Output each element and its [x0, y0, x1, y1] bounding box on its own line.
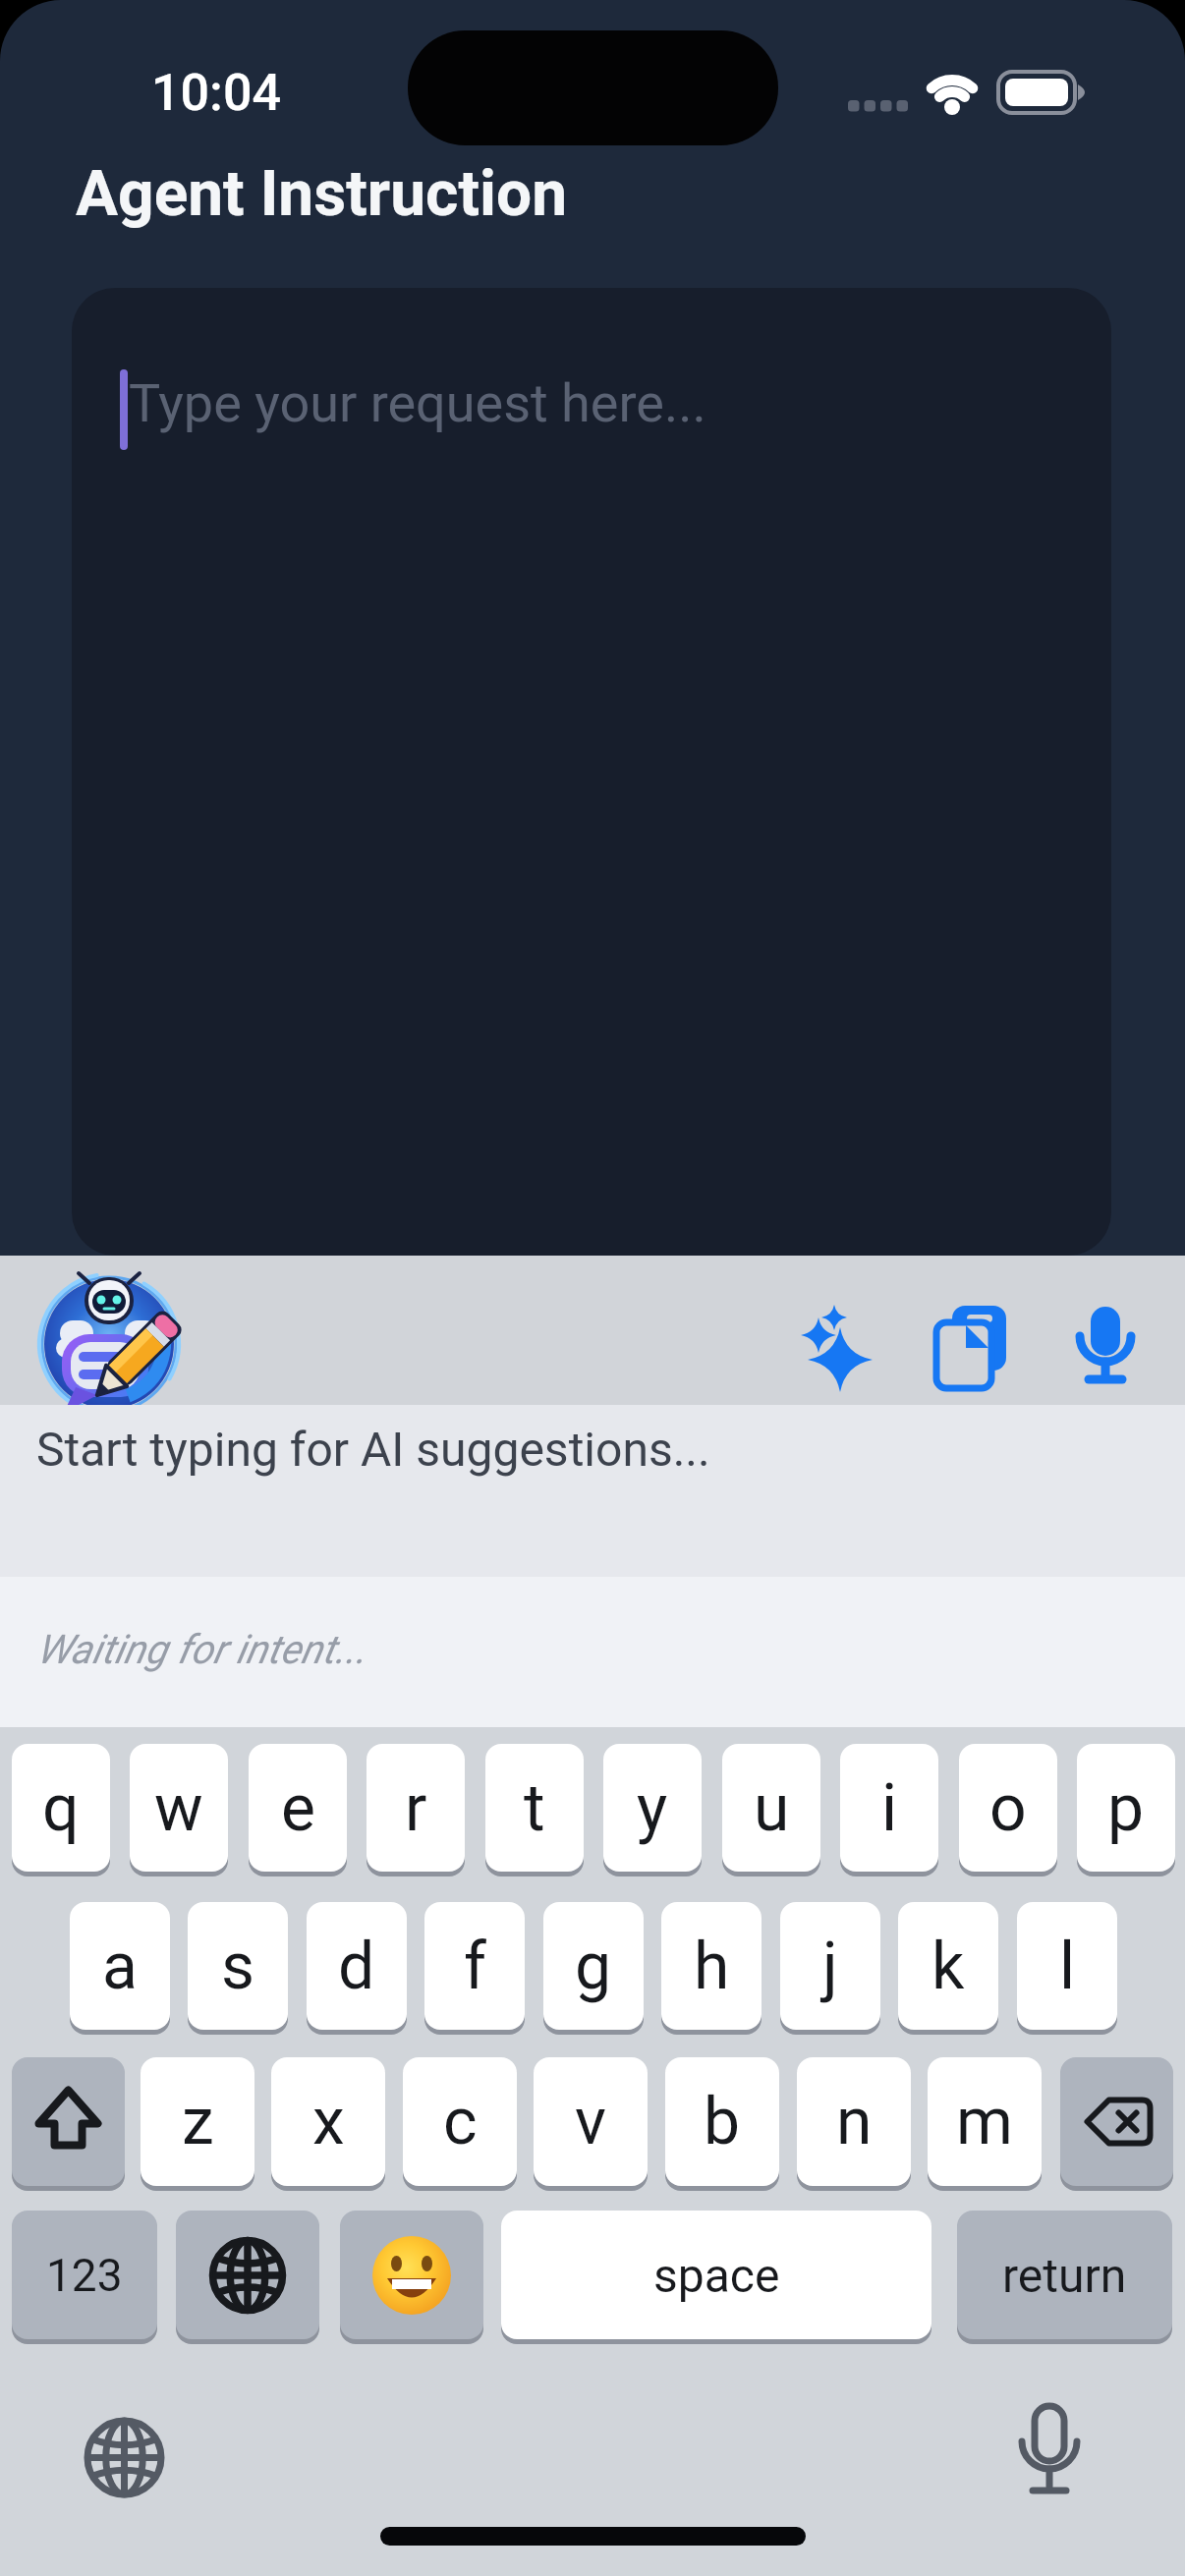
button[interactable] [1007, 2400, 1092, 2503]
staticText: space [653, 2248, 780, 2303]
button[interactable]: q [12, 1744, 110, 1872]
button[interactable]: k [898, 1902, 998, 2030]
staticText: f [464, 1929, 486, 2004]
button[interactable]: o [959, 1744, 1057, 1872]
button[interactable]: f [424, 1902, 525, 2030]
button[interactable] [176, 2211, 319, 2339]
staticText: j [822, 1929, 838, 2004]
button[interactable]: e [249, 1744, 347, 1872]
button[interactable]: d [307, 1902, 407, 2030]
button[interactable] [791, 1295, 884, 1393]
staticText: x [312, 2084, 345, 2159]
button[interactable]: w [130, 1744, 228, 1872]
staticText: g [575, 1929, 612, 2004]
button[interactable]: Type your request here... [72, 288, 1111, 1256]
button[interactable] [924, 1295, 1017, 1393]
staticText: Start typing for AI suggestions... [36, 1422, 710, 1477]
staticText: e [281, 1770, 315, 1846]
staticText: y [637, 1770, 668, 1846]
button[interactable]: y [603, 1744, 702, 1872]
staticText: w [154, 1770, 203, 1846]
staticText: h [694, 1929, 730, 2004]
button[interactable]: n [797, 2057, 911, 2186]
staticText: return [1002, 2248, 1127, 2303]
button[interactable] [1060, 2057, 1173, 2186]
staticText: z [182, 2084, 214, 2159]
button[interactable]: p [1077, 1744, 1175, 1872]
button[interactable]: v [534, 2057, 648, 2186]
staticText: i [881, 1770, 898, 1846]
staticText: o [989, 1770, 1027, 1846]
button[interactable]: c [403, 2057, 517, 2186]
staticText: t [524, 1770, 545, 1846]
staticText: r [405, 1770, 427, 1846]
button[interactable] [1066, 1295, 1150, 1393]
staticText: a [102, 1929, 138, 2004]
button[interactable]: return [957, 2211, 1172, 2339]
button[interactable]: h [661, 1902, 762, 2030]
staticText: u [754, 1770, 790, 1846]
button[interactable]: u [722, 1744, 820, 1872]
staticText: l [1059, 1929, 1076, 2004]
button[interactable]: t [485, 1744, 584, 1872]
staticText: 123 [46, 2249, 123, 2302]
button[interactable] [81, 2414, 168, 2501]
staticText: n [836, 2084, 873, 2159]
staticText: c [443, 2084, 478, 2159]
staticText: v [575, 2084, 606, 2159]
button[interactable]: b [665, 2057, 779, 2186]
staticText: p [1107, 1770, 1145, 1846]
button[interactable]: x [271, 2057, 385, 2186]
staticText: s [221, 1929, 255, 2004]
button[interactable]: Start typing for AI suggestions... [0, 1405, 1185, 1577]
staticText: b [704, 2084, 741, 2159]
staticText: Type your request here... [129, 372, 706, 434]
staticText: Waiting for intent... [36, 1626, 367, 1673]
staticText: q [42, 1770, 80, 1846]
staticText: 10:04 [151, 63, 282, 123]
button[interactable]: i [840, 1744, 938, 1872]
button[interactable]: m [928, 2057, 1042, 2186]
button[interactable] [12, 2057, 125, 2186]
button[interactable] [35, 1273, 183, 1411]
button[interactable]: l [1017, 1902, 1117, 2030]
button[interactable]: j [780, 1902, 880, 2030]
staticText: m [956, 2084, 1013, 2159]
button[interactable] [340, 2211, 483, 2339]
button[interactable]: g [543, 1902, 644, 2030]
button[interactable]: s [188, 1902, 288, 2030]
button[interactable]: z [141, 2057, 254, 2186]
button[interactable]: r [367, 1744, 465, 1872]
button[interactable]: Waiting for intent... [0, 1577, 1185, 1727]
button[interactable]: a [70, 1902, 170, 2030]
staticText: k [931, 1929, 965, 2004]
staticText: d [338, 1929, 375, 2004]
button[interactable]: space [501, 2211, 931, 2339]
staticText: Agent Instruction [76, 157, 567, 231]
button[interactable]: 123 [12, 2211, 157, 2339]
